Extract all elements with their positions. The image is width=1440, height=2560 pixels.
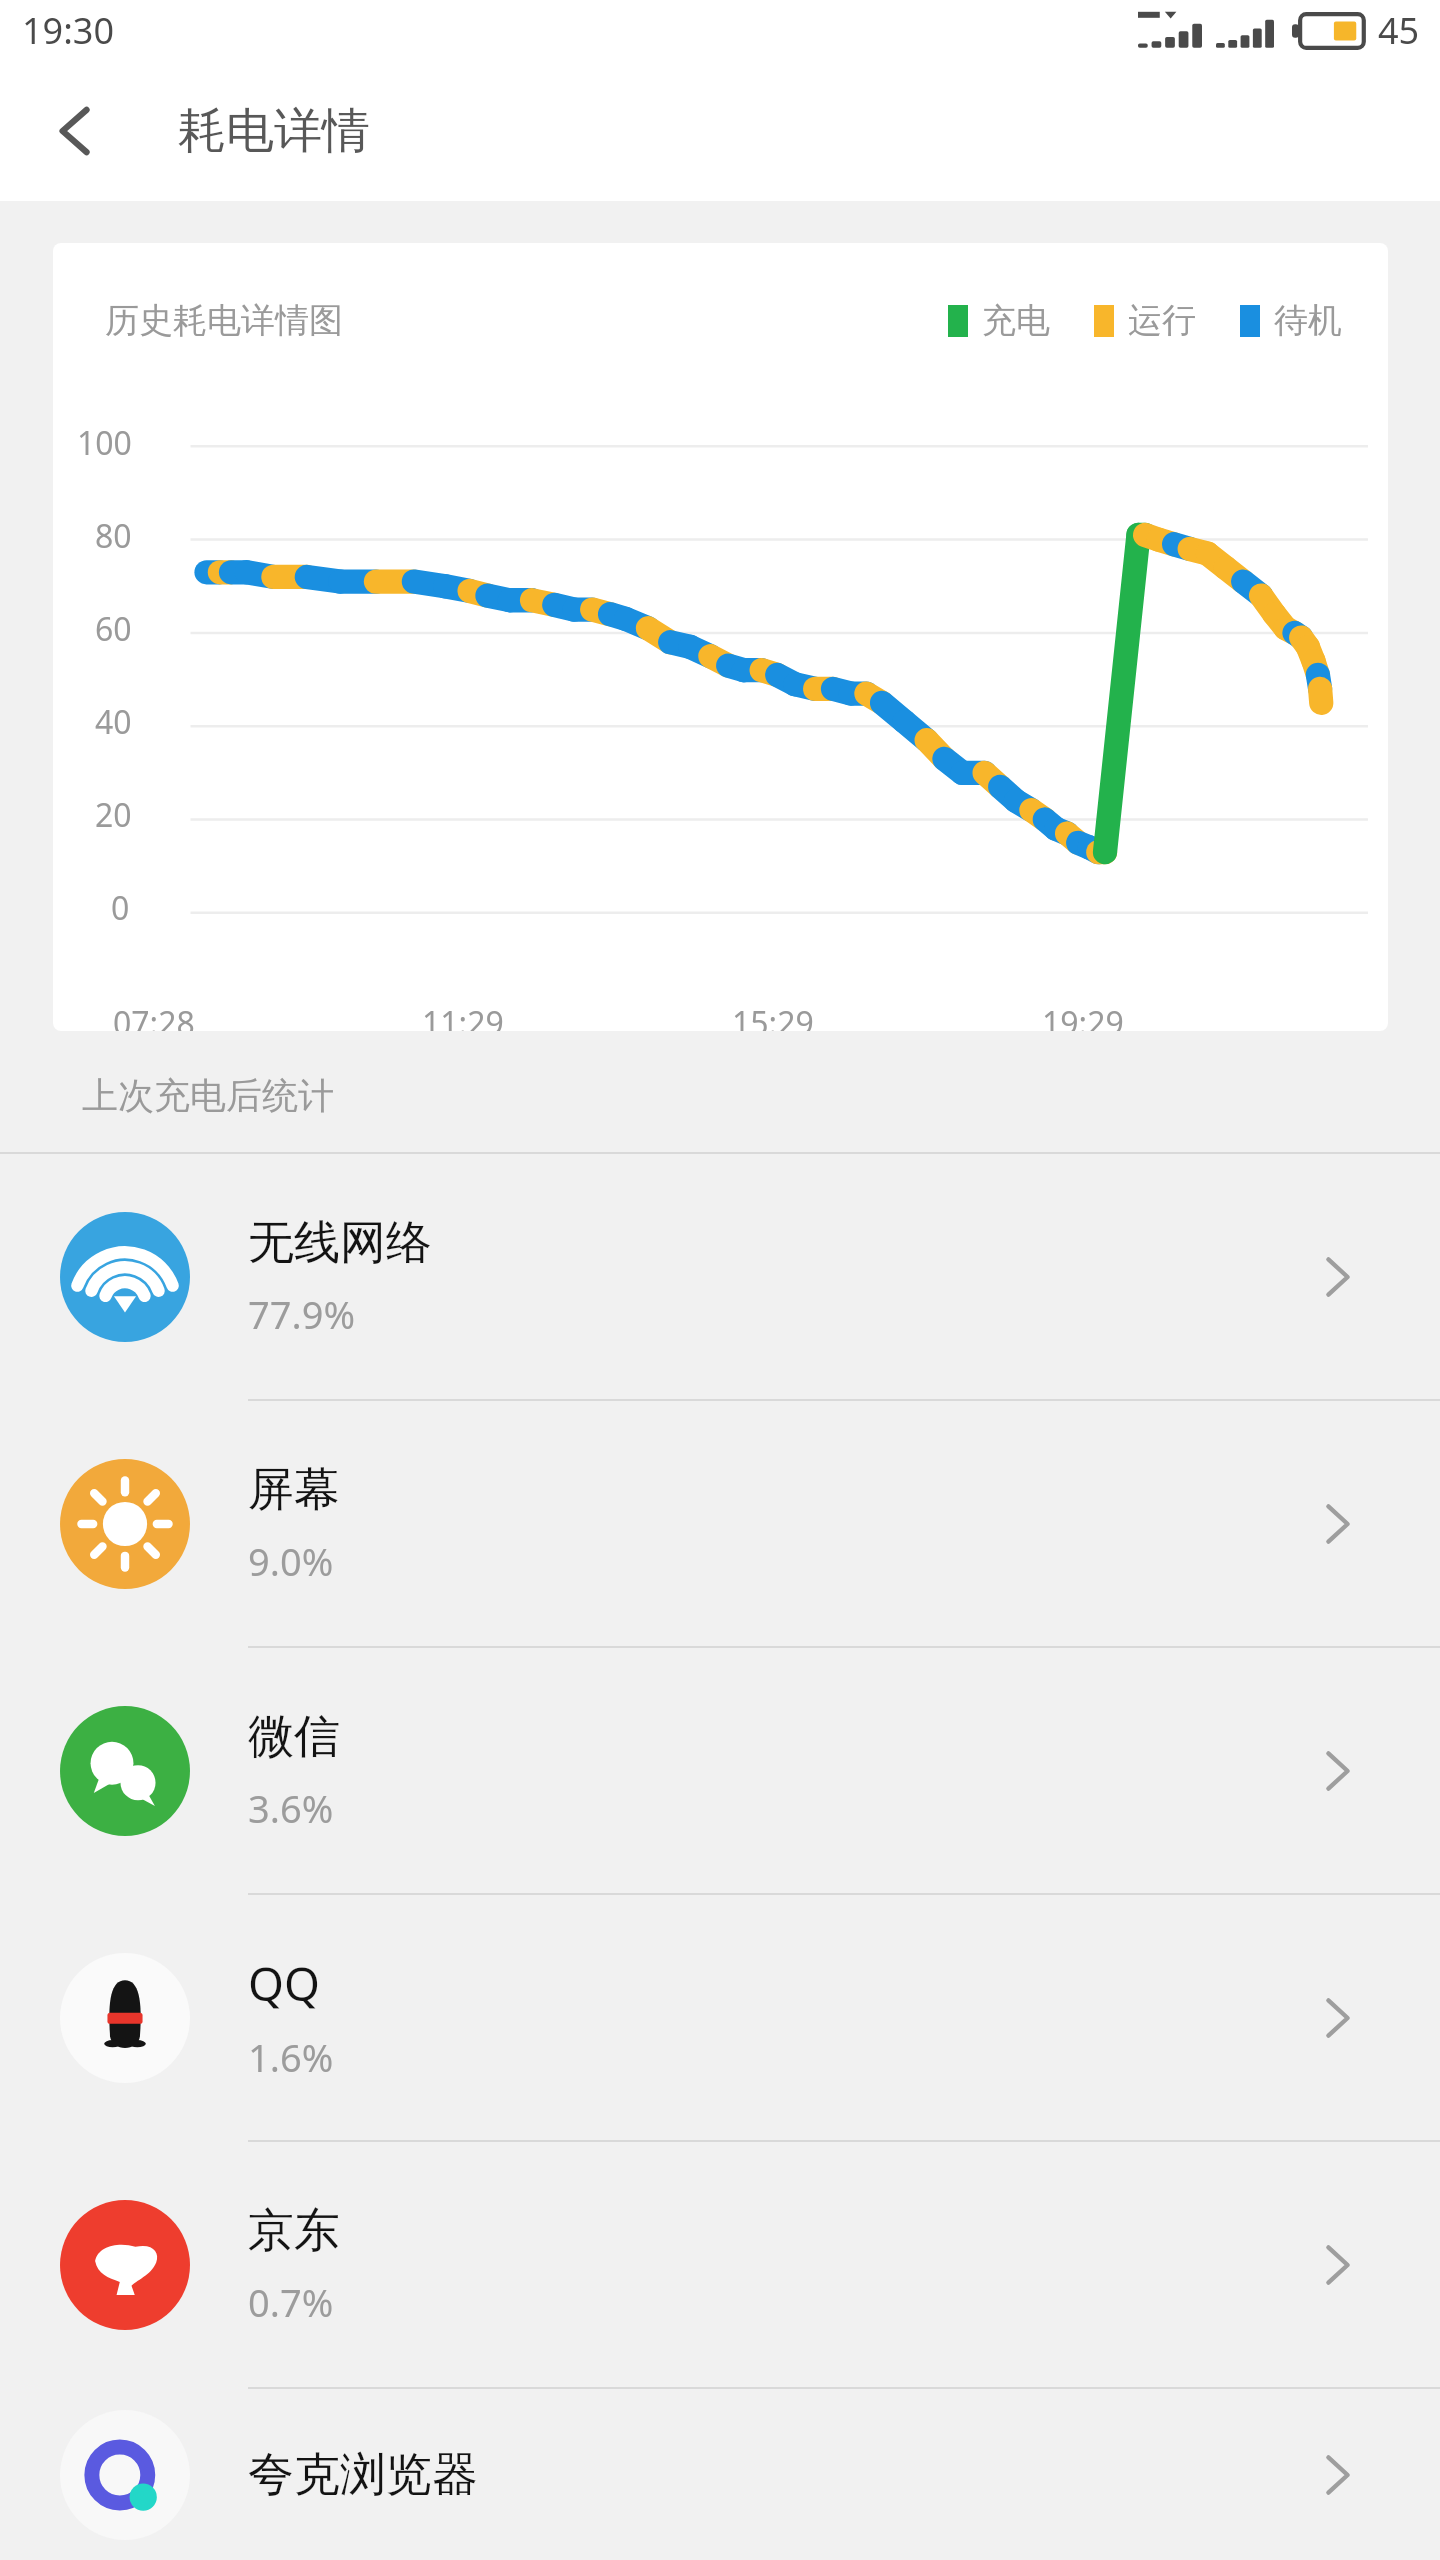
button[interactable]: 屏幕 [0, 1401, 1440, 1648]
staticText: 0.7% [248, 2276, 334, 2328]
staticText: 80 [95, 514, 132, 558]
staticText: 屏幕 [248, 1461, 340, 1519]
staticText: 0 [111, 886, 130, 930]
staticText: 45 [1378, 6, 1420, 55]
staticText: 充电 [982, 299, 1050, 342]
staticText: 运行 [1128, 299, 1196, 342]
staticText: 100 [77, 421, 132, 465]
button[interactable]: 京东 [0, 2142, 1440, 2389]
button[interactable]: Back [26, 81, 126, 181]
staticText: 19:29 [1042, 1001, 1124, 1031]
staticText: 19:30 [22, 6, 115, 55]
staticText: 77.9% [248, 1288, 355, 1340]
button[interactable]: 夸克浏览器 [0, 2389, 1440, 2560]
staticText: 11:29 [422, 1001, 504, 1031]
staticText: 40 [95, 700, 132, 744]
staticText: 京东 [248, 2202, 340, 2260]
staticText: 20 [95, 793, 132, 837]
staticText: 3.6% [248, 1782, 334, 1834]
staticText: 历史耗电详情图 [105, 299, 343, 342]
staticText: 上次充电后统计 [82, 1073, 334, 1118]
staticText: 07:28 [113, 1001, 195, 1031]
staticText: 耗电详情 [178, 101, 370, 161]
button[interactable]: 无线网络 [0, 1154, 1440, 1401]
button[interactable]: QQ [0, 1895, 1440, 2142]
staticText: QQ [248, 1952, 320, 2015]
staticText: 夸克浏览器 [248, 2446, 478, 2504]
staticText: 15:29 [732, 1001, 814, 1031]
staticText: 60 [95, 607, 132, 651]
staticText: 待机 [1274, 299, 1342, 342]
staticText: 1.6% [248, 2031, 334, 2083]
staticText: 9.0% [248, 1535, 334, 1587]
staticText: 微信 [248, 1708, 340, 1766]
staticText: 无线网络 [248, 1214, 432, 1272]
button[interactable]: 微信 [0, 1648, 1440, 1895]
